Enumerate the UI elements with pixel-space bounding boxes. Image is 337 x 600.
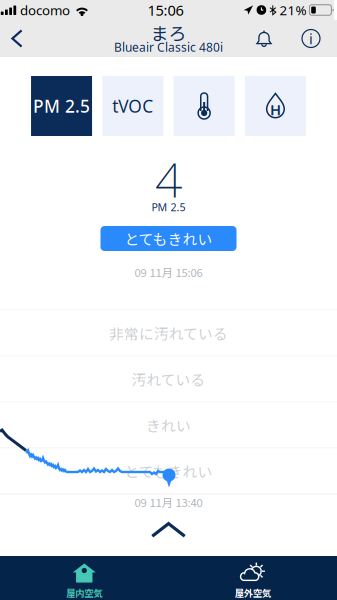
- button[interactable]: 屋内空気: [0, 556, 168, 600]
- button[interactable]: tVOC: [102, 76, 163, 136]
- staticText: 09 11月 13:40: [134, 494, 202, 510]
- button[interactable]: PM 2.5: [31, 76, 92, 136]
- staticText: 非常に汚れている: [109, 322, 228, 344]
- staticText: 15:06: [147, 0, 183, 20]
- staticText: 屋内空気: [66, 586, 102, 599]
- button[interactable]: Humidity: [245, 76, 306, 136]
- staticText: 4: [155, 147, 182, 211]
- button[interactable]: Information: [292, 20, 329, 57]
- staticText: H: [270, 100, 281, 119]
- staticText: docomo: [20, 1, 70, 19]
- staticText: 21%: [279, 1, 306, 19]
- staticText: 汚れている: [131, 368, 205, 390]
- button[interactable]: 屋外空気: [168, 556, 337, 600]
- button[interactable]: Notifications: [246, 20, 281, 57]
- staticText: i: [309, 29, 313, 48]
- staticText: Blueair Classic 480i: [114, 39, 223, 55]
- staticText: とてもきれい: [124, 228, 212, 249]
- staticText: PM 2.5: [151, 200, 185, 214]
- button[interactable]: Collapse chart: [128, 512, 208, 548]
- staticText: まろ: [150, 19, 186, 46]
- staticText: 屋外空気: [235, 586, 271, 599]
- button[interactable]: Back: [0, 20, 34, 56]
- button[interactable]: Temperature: [174, 76, 235, 136]
- button[interactable]: とてもきれい: [100, 226, 236, 251]
- staticText: きれい: [146, 414, 191, 436]
- staticText: PM 2.5: [33, 94, 90, 117]
- staticText: とてもきれい: [124, 460, 212, 482]
- staticText: tVOC: [112, 94, 153, 117]
- staticText: 09 11月 15:06: [134, 264, 202, 280]
